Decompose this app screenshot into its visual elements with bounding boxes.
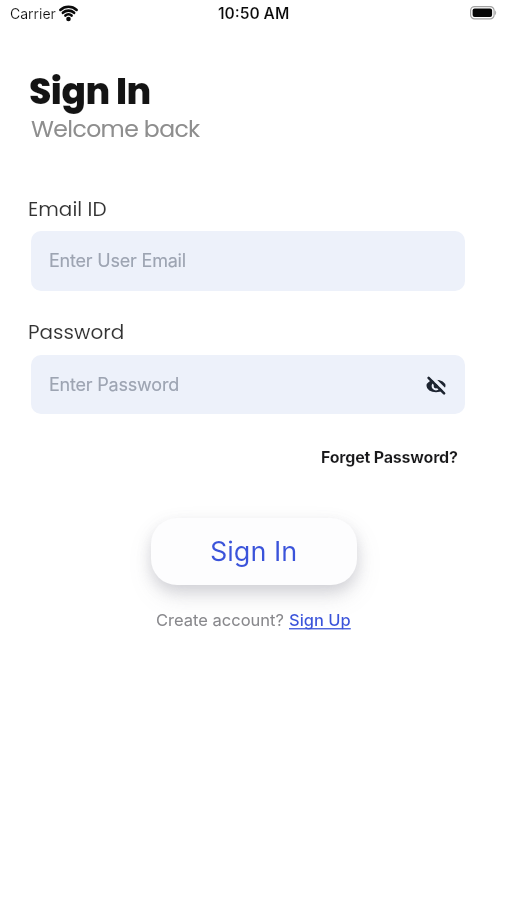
staticText: Password [28, 318, 125, 346]
staticText: Enter User Email [49, 250, 186, 272]
staticText: Sign In [29, 66, 151, 116]
staticText: Carrier [10, 5, 56, 22]
staticText: 10:50 AM [218, 4, 290, 23]
staticText: Email ID [28, 195, 107, 223]
button[interactable]: Forget Password? [321, 447, 458, 466]
button[interactable]: Sign Up [289, 610, 351, 630]
staticText: Sign In [210, 535, 298, 568]
staticText: Enter Password [49, 374, 180, 396]
button[interactable] [425, 375, 447, 397]
button[interactable]: Sign In [151, 518, 357, 585]
staticText: Create account? [156, 610, 289, 630]
button[interactable]: Enter User Email [31, 231, 465, 291]
staticText: Welcome back [31, 112, 200, 145]
button[interactable]: Enter Password [31, 355, 465, 414]
